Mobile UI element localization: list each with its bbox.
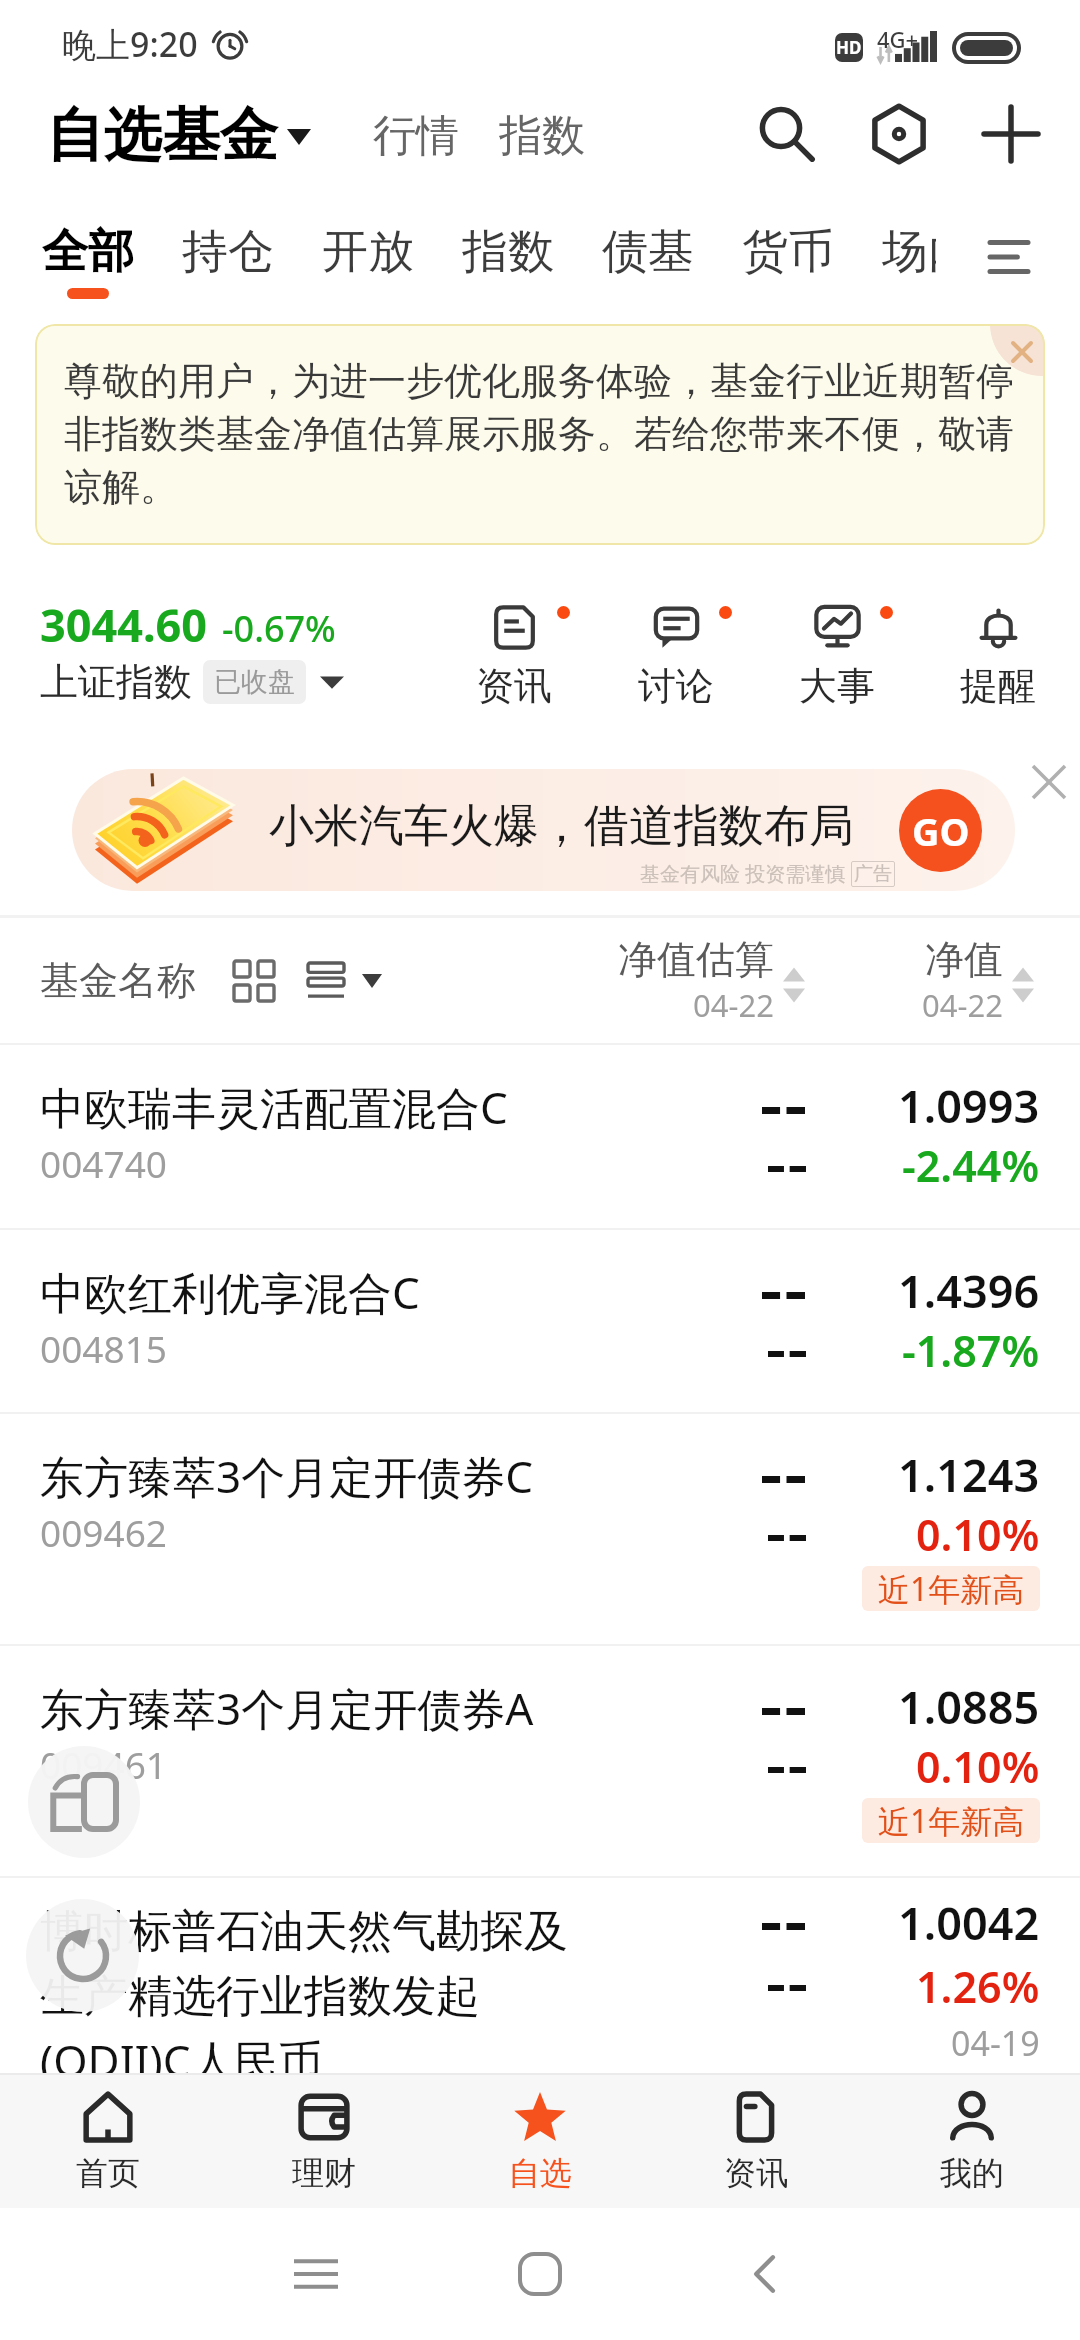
- staticText: 基金名称: [40, 956, 196, 1005]
- button[interactable]: 指数: [499, 109, 585, 163]
- button[interactable]: 东方臻萃3个月定开债券A: [0, 1646, 1080, 1876]
- staticText: 基金有风险 投资需谨慎: [640, 860, 846, 887]
- button[interactable]: 货币: [742, 223, 834, 281]
- staticText: 大事: [799, 662, 875, 710]
- button[interactable]: All tabs: [971, 219, 1047, 295]
- button[interactable]: 东方臻萃3个月定开债券C: [0, 1414, 1080, 1644]
- staticText: 理财: [292, 2153, 356, 2193]
- staticText: 中欧红利优享混合C: [40, 1262, 420, 1322]
- staticText: 自选: [508, 2153, 572, 2193]
- button[interactable]: 净值估算: [618, 935, 805, 1026]
- button[interactable]: Close ad: [1016, 750, 1078, 812]
- button[interactable]: 博时标普石油天然气勘探及 生产精选行业指数发起 (QDII)C人民币: [0, 1878, 1080, 2075]
- button[interactable]: 提醒: [938, 602, 1058, 710]
- staticText: 小米汽车火爆，借道指数布局: [269, 798, 854, 855]
- button[interactable]: 资讯: [454, 602, 574, 710]
- staticText: 博时标普石油天然气勘探及 生产精选行业指数发起 (QDII)C人民币: [40, 1904, 568, 2075]
- button[interactable]: 开放: [322, 223, 414, 281]
- staticText: -1.87%: [902, 1321, 1040, 1380]
- staticText: 全部: [42, 223, 134, 281]
- button[interactable]: Search: [744, 91, 830, 177]
- staticText: 009462: [40, 1507, 167, 1557]
- button[interactable]: 指数: [462, 223, 554, 281]
- staticText: 已收盘: [214, 665, 295, 699]
- button[interactable]: 资讯: [648, 2075, 864, 2208]
- staticText: 3044.60: [40, 594, 208, 655]
- button[interactable]: Back: [741, 2250, 789, 2298]
- button[interactable]: 自选基金: [46, 99, 311, 172]
- staticText: 1.0993: [898, 1075, 1040, 1136]
- button[interactable]: 中欧红利优享混合C: [0, 1230, 1080, 1412]
- button[interactable]: 全部: [42, 223, 134, 281]
- button[interactable]: 中欧瑞丰灵活配置混合C: [0, 1045, 1080, 1228]
- button[interactable]: 首页: [0, 2075, 216, 2208]
- button[interactable]: 净值: [922, 935, 1034, 1026]
- staticText: 04-22: [922, 984, 1003, 1026]
- button[interactable]: Home: [516, 2250, 564, 2298]
- button[interactable]: Add fund: [968, 91, 1054, 177]
- button[interactable]: 大事: [777, 602, 897, 710]
- button[interactable]: Close notice: [990, 324, 1045, 376]
- button[interactable]: 行情: [373, 109, 459, 163]
- staticText: 上证指数: [40, 658, 192, 706]
- staticText: -0.67%: [222, 604, 336, 653]
- staticText: 中欧瑞丰灵活配置混合C: [40, 1077, 508, 1137]
- staticText: 尊敬的用户，为进一步优化服务体验，基金行业近期暂停非指数类基金净值估算展示服务。…: [64, 357, 1025, 511]
- staticText: 近1年新高: [878, 1567, 1025, 1611]
- staticText: 东方臻萃3个月定开债券A: [40, 1678, 534, 1738]
- staticText: 1.4396: [898, 1260, 1040, 1321]
- button[interactable]: 小米汽车火爆，借道指数布局: [72, 769, 1015, 891]
- staticText: 提醒: [960, 662, 1036, 710]
- staticText: 净值估算: [618, 935, 774, 984]
- staticText: HD: [836, 36, 862, 59]
- staticText: 近1年新高: [878, 1799, 1025, 1843]
- button[interactable]: 债基: [602, 223, 694, 281]
- button[interactable]: 讨论: [616, 602, 736, 710]
- staticText: 1.0885: [898, 1676, 1040, 1737]
- button[interactable]: 我的: [864, 2075, 1080, 2208]
- staticText: 我的: [940, 2153, 1004, 2193]
- button[interactable]: Scan: [856, 91, 942, 177]
- staticText: 0.10%: [916, 1505, 1040, 1564]
- staticText: 晚上9:20: [62, 21, 198, 67]
- button[interactable]: Recents: [292, 2250, 340, 2298]
- button[interactable]: 3044.60: [40, 594, 344, 706]
- staticText: 04-22: [693, 984, 774, 1026]
- staticText: -2.44%: [902, 1136, 1040, 1195]
- staticText: 1.1243: [898, 1444, 1040, 1505]
- button[interactable]: 自选: [432, 2075, 648, 2208]
- staticText: 净值: [925, 935, 1003, 984]
- staticText: 009461: [40, 1739, 167, 1789]
- staticText: 004815: [40, 1323, 167, 1373]
- button[interactable]: List view: [308, 963, 344, 999]
- staticText: 0.10%: [916, 1737, 1040, 1796]
- staticText: 1.0042: [898, 1892, 1040, 1953]
- staticText: 首页: [76, 2153, 140, 2193]
- button[interactable]: 理财: [216, 2075, 432, 2208]
- staticText: 自选基金: [46, 99, 278, 172]
- staticText: 东方臻萃3个月定开债券C: [40, 1446, 533, 1506]
- staticText: GO: [912, 805, 970, 857]
- button[interactable]: 持仓: [182, 223, 274, 281]
- staticText: 04-19: [951, 2020, 1040, 2066]
- staticText: 资讯: [476, 662, 552, 710]
- button[interactable]: 场内: [882, 223, 936, 281]
- button[interactable]: Grid view: [234, 961, 274, 1001]
- staticText: 4G+: [877, 24, 919, 54]
- button[interactable]: Split screen: [28, 1746, 140, 1858]
- staticText: 广告: [854, 862, 892, 886]
- staticText: 004740: [40, 1138, 167, 1188]
- staticText: 1.26%: [916, 1957, 1040, 2016]
- button[interactable]: Refresh: [26, 1899, 139, 2012]
- staticText: 讨论: [638, 662, 714, 710]
- staticText: 资讯: [724, 2153, 788, 2193]
